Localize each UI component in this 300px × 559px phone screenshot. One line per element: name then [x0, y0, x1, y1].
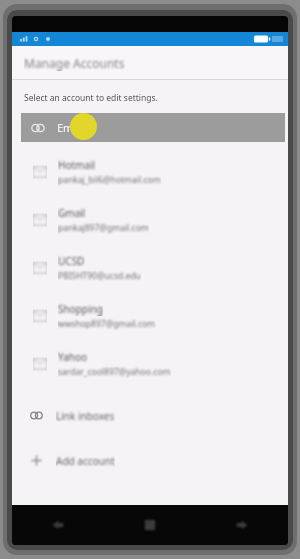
staticText: Hotmail	[58, 158, 96, 172]
staticText: Gmail	[58, 206, 86, 220]
button[interactable]: Shopping	[12, 292, 288, 340]
staticText: Email	[57, 120, 86, 135]
button[interactable]: Add account	[12, 438, 288, 483]
staticText: UCSD	[58, 254, 85, 268]
button[interactable]: UCSD	[12, 244, 288, 292]
staticText: PBISHT90@ucsd.edu	[58, 270, 141, 282]
button[interactable]: Link inboxes	[12, 393, 288, 438]
staticText: Yahoo	[58, 350, 88, 364]
staticText: Manage Accounts	[24, 55, 125, 71]
staticText: sardar_cool897@yahoo.com	[58, 366, 171, 378]
staticText: Link inboxes	[56, 409, 115, 423]
button[interactable]: Yahoo	[12, 340, 288, 388]
staticText: pankaj897@gmail.com	[58, 222, 149, 234]
button[interactable]: Home	[104, 505, 196, 545]
staticText: pankaj_bil6@hotmail.com	[58, 174, 161, 186]
button[interactable]: Back	[12, 505, 104, 545]
button[interactable]: Hotmail	[12, 148, 288, 196]
button[interactable]: Search	[196, 505, 288, 545]
staticText: Add account	[56, 454, 115, 468]
button[interactable]: Gmail	[12, 196, 288, 244]
staticText: Shopping	[58, 302, 103, 316]
staticText: wwshop897@gmail.com	[58, 318, 156, 330]
staticText: Select an account to edit settings.	[24, 92, 158, 104]
button[interactable]: Email	[21, 113, 285, 142]
